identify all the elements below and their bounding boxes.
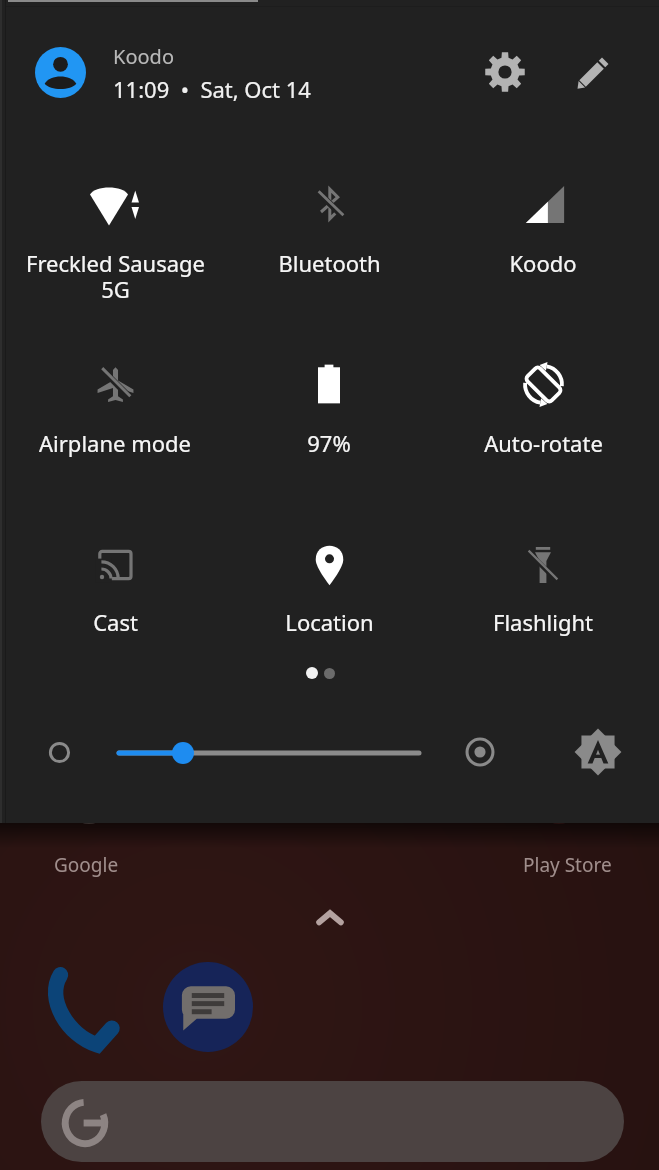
button[interactable]: Edit tiles <box>569 49 617 97</box>
button[interactable] <box>15 164 215 274</box>
button[interactable] <box>15 525 215 635</box>
staticText: Flashlight <box>493 607 593 637</box>
staticText: 11:09 • Sat, Oct 14 <box>113 74 311 104</box>
button[interactable]: Brightness <box>105 733 435 773</box>
staticText: Auto-rotate <box>484 428 603 458</box>
button[interactable]: Google folder <box>68 782 110 824</box>
button[interactable]: Page 1 <box>306 667 318 679</box>
button[interactable] <box>443 344 643 454</box>
staticText: Airplane mode <box>39 428 191 458</box>
staticText: Cast <box>93 607 138 637</box>
button[interactable]: Phone <box>42 962 134 1054</box>
staticText: Freckled Sausage 5G <box>26 248 205 305</box>
button[interactable]: Minimum brightness <box>42 735 77 770</box>
button[interactable] <box>15 344 215 454</box>
staticText: Bluetooth <box>278 248 381 278</box>
button[interactable]: Play Store <box>523 852 612 878</box>
button[interactable]: Maximum brightness <box>462 734 498 770</box>
button[interactable] <box>229 525 429 635</box>
button[interactable]: Play Store <box>538 782 580 824</box>
button[interactable]: Settings <box>481 48 529 96</box>
button[interactable]: Open app drawer <box>312 901 348 937</box>
button[interactable] <box>443 164 643 274</box>
button[interactable] <box>443 525 643 635</box>
staticText: Koodo <box>509 248 577 278</box>
button[interactable]: User account <box>35 47 86 98</box>
staticText: Location <box>285 607 374 637</box>
button[interactable]: Page 2 <box>324 668 335 679</box>
staticText: Play Store <box>523 852 612 878</box>
button[interactable]: Auto brightness <box>574 728 622 776</box>
button[interactable] <box>229 164 429 274</box>
staticText: 97% <box>307 428 351 458</box>
staticText: Koodo <box>113 43 174 70</box>
staticText: Google <box>54 852 119 878</box>
button[interactable]: Search <box>41 1081 624 1162</box>
button[interactable]: Messages <box>163 962 253 1052</box>
button[interactable] <box>229 344 429 454</box>
button[interactable]: Google <box>54 852 119 878</box>
